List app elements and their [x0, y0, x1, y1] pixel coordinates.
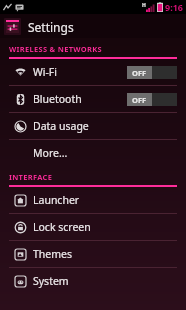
staticText: Bluetooth [33, 92, 82, 106]
staticText: Data usage [33, 119, 89, 133]
button[interactable]: Toggle off [127, 93, 177, 106]
button[interactable]: Settings [0, 14, 186, 38]
button[interactable]: Themes [0, 241, 186, 267]
staticText: Themes [33, 247, 73, 261]
staticText: More… [33, 146, 68, 160]
button[interactable]: More… [0, 140, 186, 166]
staticText: OFF [132, 95, 147, 105]
button[interactable]: Wi-Fi [0, 59, 186, 85]
staticText: H [142, 2, 146, 9]
button[interactable]: Launcher [0, 187, 186, 213]
staticText: Launcher [33, 193, 80, 207]
staticText: System [33, 274, 69, 288]
button[interactable]: Bluetooth [0, 86, 186, 112]
staticText: Settings [28, 19, 74, 35]
staticText: Lock screen [33, 220, 91, 234]
button[interactable]: Lock screen [0, 214, 186, 240]
staticText: OFF [132, 68, 147, 78]
staticText: 9:16 [165, 1, 183, 13]
button[interactable]: System [0, 268, 186, 294]
staticText: INTERFACE [9, 172, 53, 182]
staticText: WIRELESS & NETWORKS [9, 44, 102, 54]
button[interactable]: Toggle off [127, 66, 177, 79]
staticText: Wi-Fi [33, 65, 58, 79]
button[interactable]: Data usage [0, 113, 186, 139]
